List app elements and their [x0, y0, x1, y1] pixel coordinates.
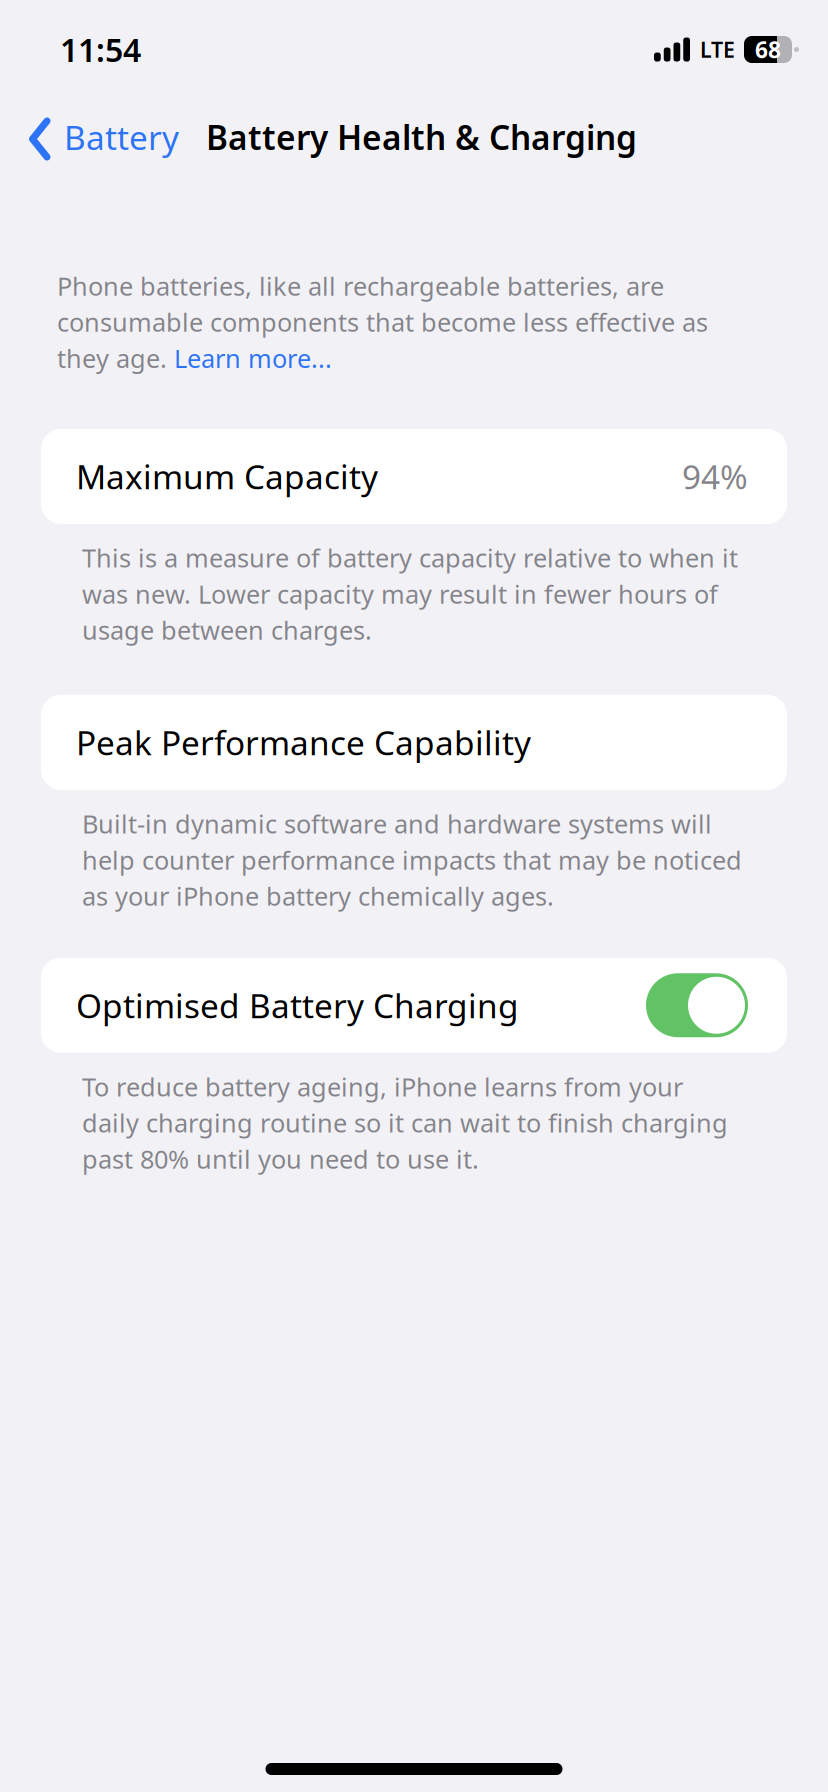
staticText: usage between charges.: [82, 613, 372, 647]
button[interactable]: Learn more...: [174, 341, 332, 375]
staticText: Learn more...: [174, 341, 332, 375]
staticText: This is a measure of battery capacity re…: [82, 541, 738, 574]
staticText: they age.: [57, 341, 174, 375]
button[interactable]: Peak Performance Capability: [0, 695, 828, 790]
staticText: Battery: [64, 115, 179, 159]
staticText: daily charging routine so it can wait to…: [82, 1106, 728, 1139]
staticText: Optimised Battery Charging: [76, 983, 519, 1027]
staticText: help counter performance impacts that ma…: [82, 843, 742, 877]
staticText: LTE: [700, 35, 735, 64]
staticText: To reduce battery ageing, iPhone learns …: [82, 1070, 683, 1103]
staticText: Peak Performance Capability: [76, 720, 531, 764]
staticText: was new. Lower capacity may result in fe…: [82, 577, 718, 611]
staticText: as your iPhone battery chemically ages.: [82, 879, 554, 913]
staticText: consumable components that become less e…: [57, 305, 708, 339]
staticText: Maximum Capacity: [76, 454, 378, 499]
button[interactable]: Battery: [0, 94, 187, 180]
staticText: 94%: [682, 454, 748, 499]
staticText: 68: [755, 34, 781, 64]
staticText: Built-in dynamic software and hardware s…: [82, 807, 712, 840]
staticText: 11:54: [60, 28, 141, 71]
staticText: Phone batteries, like all rechargeable b…: [57, 269, 664, 303]
staticText: past 80% until you need to use it.: [82, 1142, 479, 1176]
button[interactable]: Optimised Battery Charging: [646, 973, 748, 1037]
staticText: Battery Health & Charging: [206, 115, 637, 159]
